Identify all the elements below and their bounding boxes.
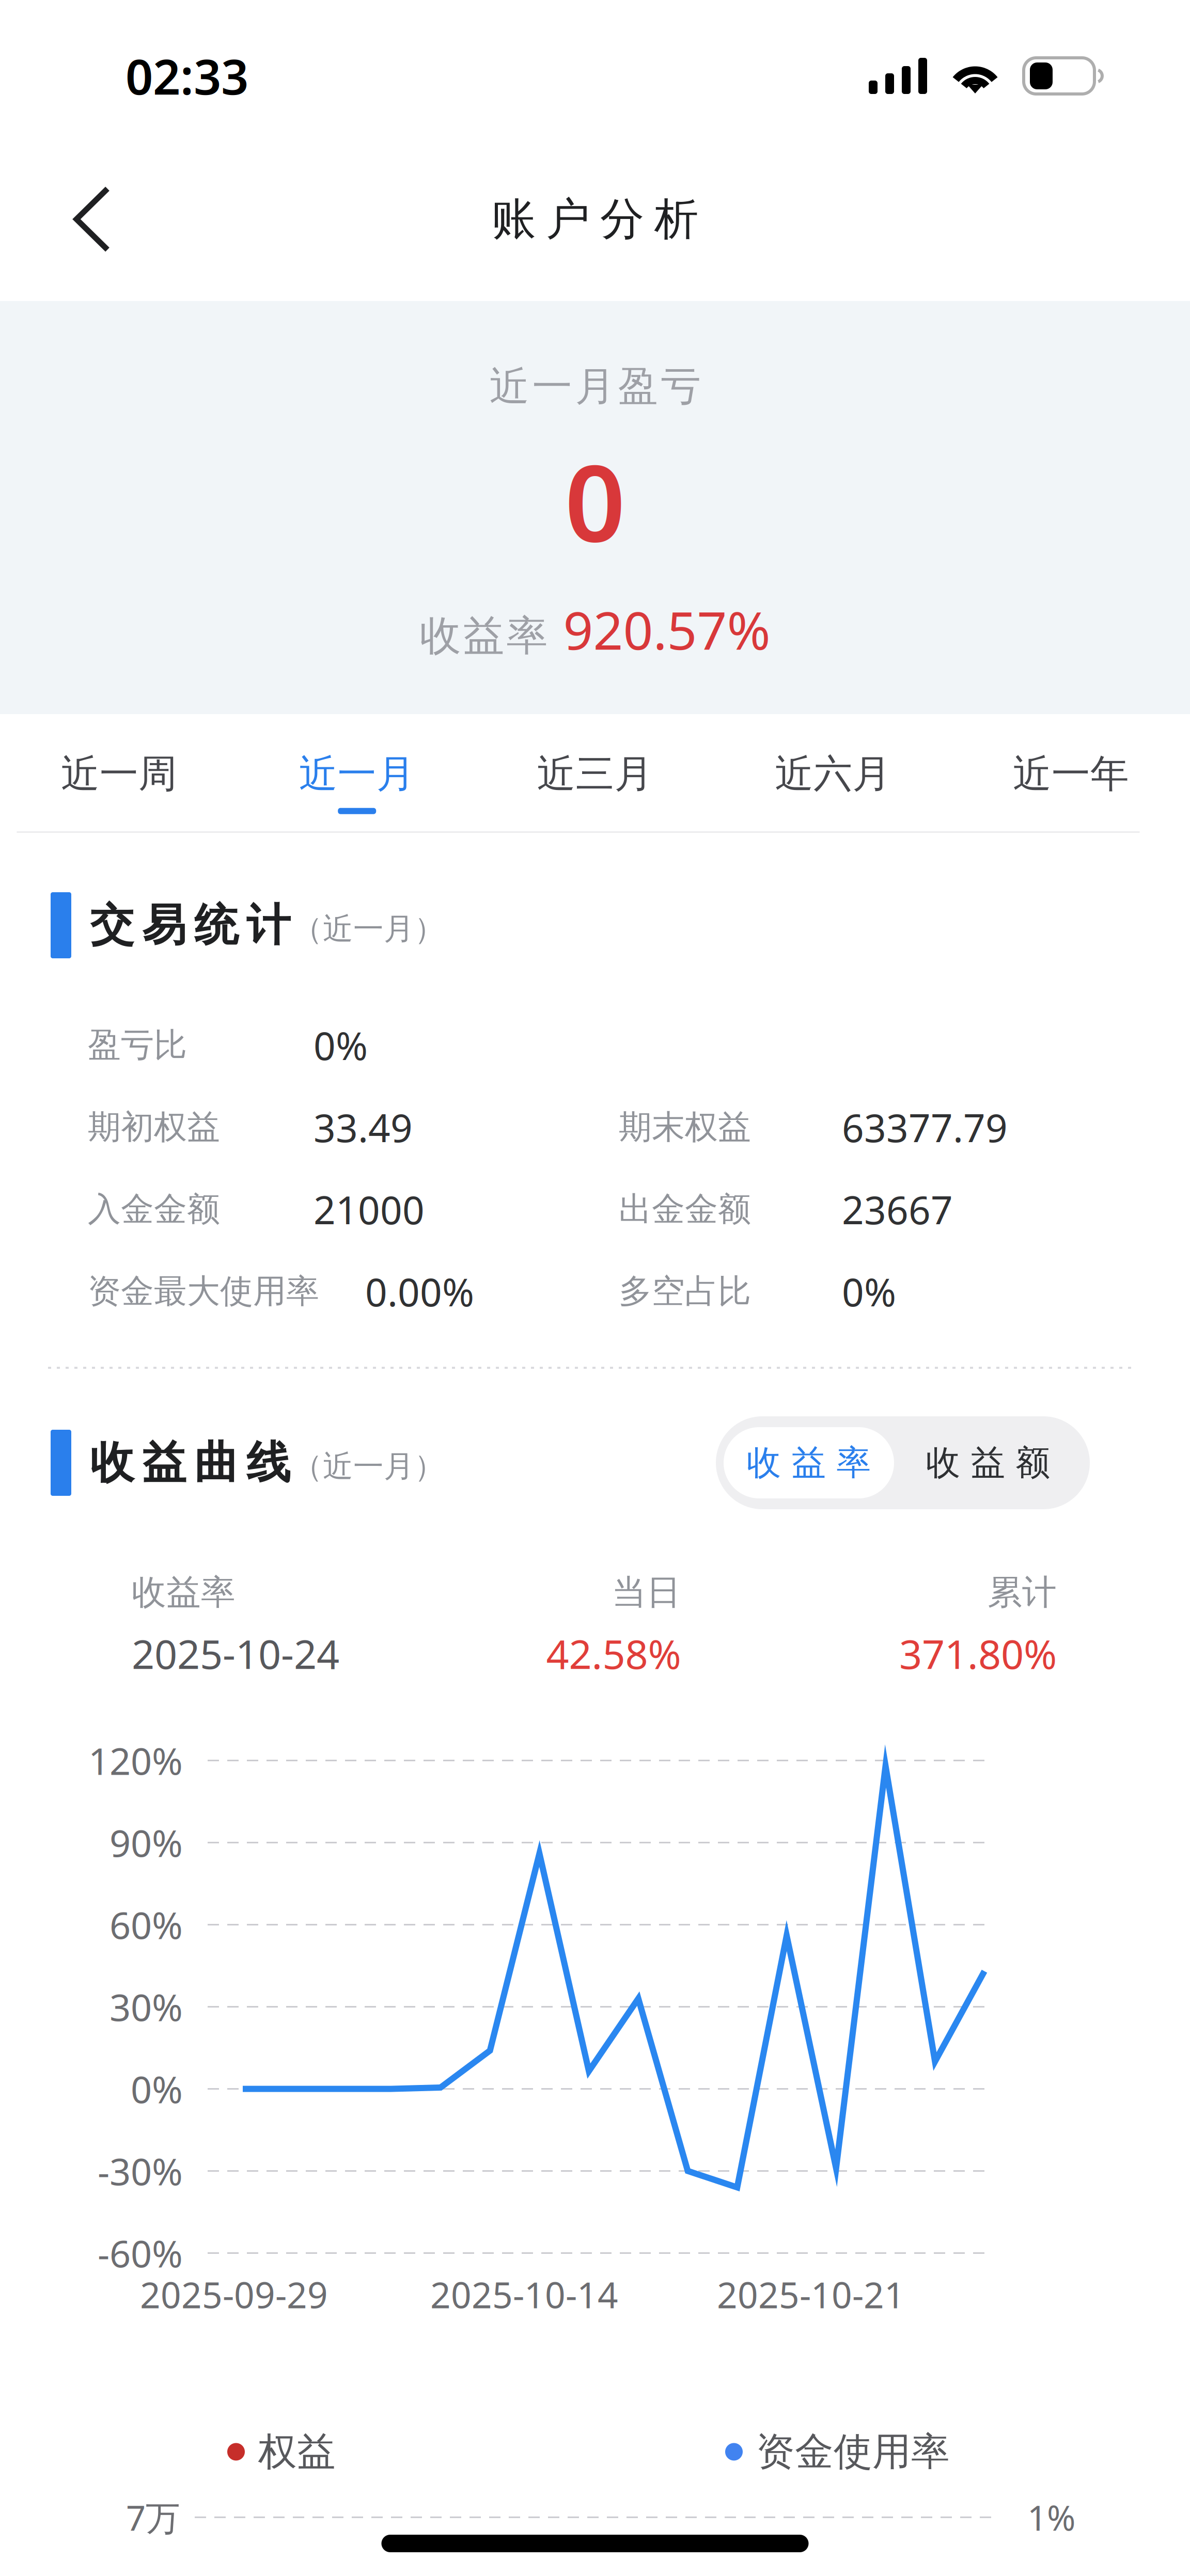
button[interactable]: 近三月: [476, 714, 714, 831]
staticText: 120%: [88, 1736, 183, 1785]
staticText: 收 益 额: [926, 1442, 1050, 1484]
staticText: 盈亏比: [88, 1025, 187, 1065]
staticText: 0.00%: [365, 1266, 474, 1317]
staticText: 33.49: [314, 1102, 413, 1153]
staticText: 权益: [258, 2428, 336, 2475]
staticText: 1%: [1027, 2494, 1075, 2540]
button[interactable]: 近一周: [0, 714, 238, 831]
staticText: 920.57%: [563, 595, 770, 664]
staticText: 近六月: [775, 750, 891, 798]
staticText: （近一月）: [292, 910, 445, 948]
staticText: 0%: [314, 1019, 368, 1071]
staticText: 析: [654, 192, 698, 246]
staticText: 近一年: [1013, 750, 1129, 798]
staticText: 近一月: [299, 750, 415, 798]
staticText: 资金最大使用率: [88, 1271, 319, 1312]
staticText: 2025-10-14: [430, 2271, 618, 2318]
staticText: 曲: [194, 1436, 238, 1490]
staticText: 益: [142, 1436, 186, 1490]
staticText: 收益率: [132, 1571, 236, 1613]
staticText: 月: [575, 362, 615, 411]
button[interactable]: 收 益 率: [724, 1427, 894, 1498]
staticText: 出金金额: [619, 1189, 751, 1230]
staticText: 90%: [109, 1818, 183, 1867]
staticText: 30%: [109, 1982, 183, 2031]
staticText: 累计: [988, 1571, 1057, 1613]
staticText: 0%: [131, 2064, 183, 2114]
staticText: 21000: [314, 1184, 425, 1235]
staticText: 一: [532, 362, 572, 411]
staticText: 63377.79: [842, 1102, 1008, 1153]
staticText: 期初权益: [88, 1107, 220, 1147]
staticText: 统: [194, 898, 238, 952]
staticText: 户: [546, 192, 590, 246]
staticText: 交: [90, 898, 134, 952]
staticText: 亏: [661, 362, 701, 411]
staticText: 近: [489, 362, 529, 411]
staticText: 收 益 率: [747, 1442, 871, 1484]
staticText: 371.80%: [899, 1627, 1057, 1680]
staticText: 分: [600, 192, 644, 246]
staticText: 当日: [612, 1571, 681, 1613]
staticText: 线: [246, 1436, 290, 1490]
button[interactable]: 收 益 额: [894, 1427, 1082, 1498]
button[interactable]: 近一月: [238, 714, 476, 831]
staticText: -60%: [98, 2228, 183, 2278]
staticText: 0%: [842, 1266, 896, 1317]
button[interactable]: Back: [0, 149, 143, 289]
staticText: 多空占比: [619, 1271, 751, 1312]
staticText: 易: [142, 898, 186, 952]
staticText: 23667: [842, 1184, 953, 1235]
staticText: 42.58%: [546, 1627, 681, 1680]
staticText: 02:33: [126, 44, 248, 108]
staticText: 资金使用率: [756, 2428, 950, 2475]
staticText: 近一周: [61, 750, 177, 798]
staticText: 入金金额: [88, 1189, 220, 1230]
staticText: 2025-10-21: [717, 2271, 905, 2318]
staticText: 7万: [126, 2494, 180, 2540]
staticText: 盈: [618, 362, 658, 411]
staticText: 2025-10-24: [132, 1627, 339, 1680]
staticText: 账: [492, 192, 536, 246]
staticText: 60%: [109, 1900, 183, 1949]
staticText: 率: [506, 611, 548, 661]
staticText: 2025-09-29: [140, 2271, 328, 2318]
staticText: 计: [246, 898, 290, 952]
staticText: 0: [565, 430, 625, 571]
staticText: 期末权益: [619, 1107, 751, 1147]
staticText: 收: [90, 1436, 134, 1490]
button[interactable]: 近一年: [952, 714, 1190, 831]
staticText: 近三月: [537, 750, 653, 798]
button[interactable]: 近六月: [714, 714, 952, 831]
staticText: 益: [463, 611, 504, 661]
staticText: 收: [420, 611, 461, 661]
staticText: -30%: [98, 2146, 183, 2196]
staticText: （近一月）: [292, 1448, 445, 1485]
